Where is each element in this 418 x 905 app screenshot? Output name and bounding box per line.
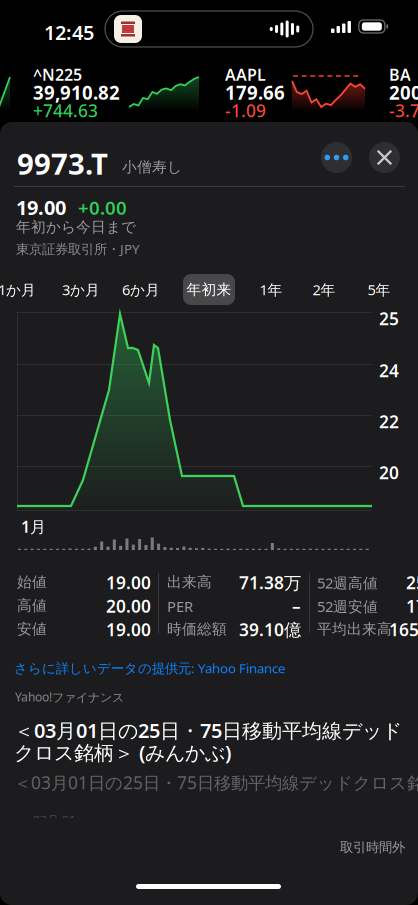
staticText: 25.70 [406, 571, 418, 594]
staticText: 時価総額 [167, 620, 227, 638]
staticText: 52週安値 [317, 596, 378, 616]
staticText: 200 [389, 80, 418, 105]
staticText: 取引時間外 [340, 839, 405, 855]
button[interactable]: 3か月 [62, 274, 100, 305]
staticText: ^N225 [33, 64, 82, 85]
staticText: 平均出来高 [317, 620, 392, 638]
staticText: +744.63 [33, 99, 98, 122]
staticText: 24 [379, 359, 399, 382]
button[interactable]: さらに詳しいデータの提供元: Yahoo Finance [14, 658, 286, 678]
staticText: -1.09 [225, 99, 266, 122]
staticText: 9973.T [17, 144, 108, 183]
staticText: 52週高値 [317, 573, 378, 592]
staticText: 始値 [17, 573, 47, 591]
staticText: AAPL [225, 64, 266, 85]
staticText: 165.3万 [389, 618, 418, 641]
button[interactable]: 1年 [258, 274, 284, 305]
staticText: 5年 [367, 280, 390, 299]
staticText: 安値 [17, 620, 47, 638]
button[interactable]: 6か月 [122, 274, 160, 305]
staticText: 1年 [259, 280, 282, 299]
staticText: 20.00 [106, 594, 151, 617]
staticText: 高値 [17, 596, 47, 614]
staticText: 20 [379, 461, 399, 484]
staticText: ＜03月01日の25日・75日移動平均線デッド [14, 717, 402, 744]
staticText: 19.00 [106, 618, 151, 641]
staticText: Yahoo!ファイナンス [15, 689, 124, 705]
staticText: BA [389, 64, 411, 85]
staticText: ＜03月01日の25日・75日移動平均線デッドクロス銘… [14, 771, 418, 794]
staticText: 1か月 [0, 280, 36, 299]
staticText: ＜ 03月 01日の [18, 812, 100, 828]
staticText: 39,910.82 [33, 80, 120, 105]
staticText: 1月 [21, 516, 46, 537]
staticText: +0.00 [78, 195, 127, 220]
staticText: 年初から今日まで [16, 218, 136, 236]
staticText: 25 [379, 307, 399, 330]
staticText: 39.10億 [239, 618, 301, 641]
button[interactable]: 年初来 [190, 274, 228, 305]
staticText: 3か月 [62, 280, 100, 299]
staticText: 71.38万 [239, 571, 301, 594]
staticText: 東京証券取引所・JPY [16, 240, 140, 258]
staticText: 19.00 [16, 194, 66, 221]
staticText: 22 [379, 410, 399, 433]
staticText: -3.7 [389, 99, 418, 122]
staticText: – [292, 594, 301, 617]
staticText: PER [167, 596, 193, 616]
staticText: 17.00 [406, 594, 418, 617]
staticText: 出来高 [167, 573, 212, 591]
staticText: クロス銘柄＞ (みんかぶ) [14, 739, 231, 766]
button[interactable]: More [321, 142, 352, 173]
staticText: 年初来 [186, 280, 231, 298]
staticText: 179.66 [225, 80, 285, 105]
staticText: さらに詳しいデータの提供元: Yahoo Finance [14, 659, 286, 677]
button[interactable]: 1か月 [0, 274, 36, 305]
staticText: 12:45 [44, 19, 94, 46]
button[interactable]: Close [369, 142, 400, 173]
staticText: 6か月 [122, 280, 160, 299]
staticText: 19.00 [106, 571, 151, 594]
button[interactable]: 2年 [311, 274, 337, 305]
staticText: 2年 [312, 280, 335, 299]
staticText: 小僧寿し [122, 158, 182, 176]
button[interactable]: 5年 [366, 274, 392, 305]
